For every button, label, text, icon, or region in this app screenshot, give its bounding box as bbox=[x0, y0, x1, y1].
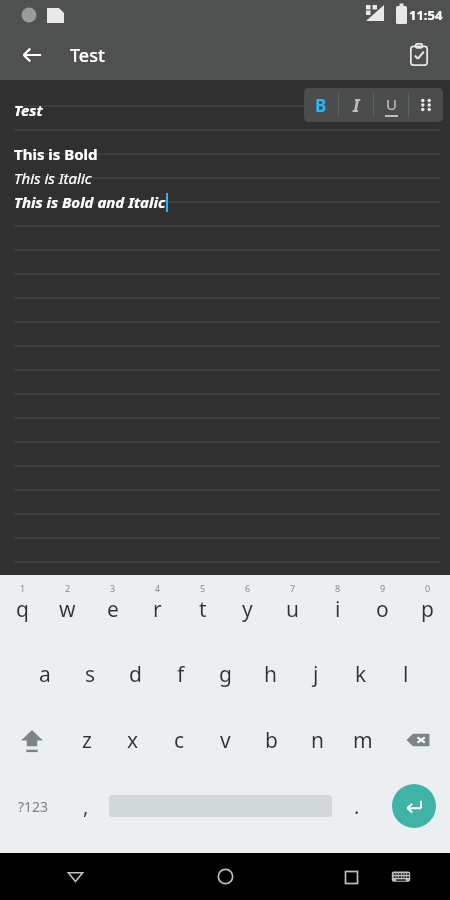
staticText: s bbox=[85, 660, 96, 689]
button[interactable]: , bbox=[67, 773, 105, 839]
staticText: w bbox=[59, 595, 76, 624]
staticText: 11:54 bbox=[409, 6, 443, 24]
staticText: This is Bold bbox=[14, 144, 98, 164]
button[interactable]: h bbox=[248, 641, 293, 707]
staticText: 4 bbox=[155, 582, 161, 594]
button[interactable]: n bbox=[294, 707, 340, 773]
staticText: a bbox=[39, 660, 51, 689]
button[interactable]: Recent apps bbox=[329, 855, 373, 899]
button[interactable]: v bbox=[202, 707, 248, 773]
button[interactable]: ?123 bbox=[0, 773, 67, 839]
button[interactable]: Back bbox=[0, 853, 150, 900]
button[interactable]: . bbox=[335, 773, 378, 839]
button[interactable]: 1 bbox=[0, 579, 45, 641]
button[interactable]: Back bbox=[12, 35, 52, 75]
staticText: m bbox=[353, 726, 373, 755]
button[interactable]: Shift bbox=[0, 707, 64, 773]
staticText: n bbox=[311, 726, 324, 755]
button[interactable]: Hide keyboard bbox=[381, 857, 421, 897]
staticText: Test bbox=[14, 100, 43, 120]
button[interactable]: l bbox=[383, 641, 428, 707]
button[interactable]: Italic bbox=[339, 88, 373, 122]
staticText: z bbox=[82, 726, 92, 755]
button[interactable]: 4 bbox=[135, 579, 180, 641]
button[interactable]: z bbox=[64, 707, 110, 773]
staticText: 7 bbox=[290, 582, 296, 594]
staticText: 9 bbox=[380, 582, 386, 594]
staticText: h bbox=[264, 660, 277, 689]
staticText: b bbox=[265, 726, 278, 755]
button[interactable]: 0 bbox=[405, 579, 450, 641]
staticText: c bbox=[174, 726, 185, 755]
button[interactable]: Enter bbox=[378, 773, 450, 839]
staticText: r bbox=[153, 595, 162, 624]
staticText: p bbox=[421, 595, 434, 624]
staticText: g bbox=[219, 660, 232, 689]
staticText: v bbox=[220, 726, 231, 755]
staticText: 6 bbox=[245, 582, 251, 594]
staticText: 0 bbox=[425, 582, 431, 594]
button[interactable]: Checklist bbox=[398, 34, 440, 76]
button[interactable]: 6 bbox=[225, 579, 270, 641]
button[interactable]: 3 bbox=[90, 579, 135, 641]
staticText: I bbox=[353, 94, 360, 117]
button[interactable]: Space bbox=[105, 773, 335, 839]
staticText: j bbox=[313, 660, 319, 689]
staticText: 1 bbox=[20, 582, 26, 594]
staticText: f bbox=[177, 660, 185, 689]
button[interactable]: Backspace bbox=[386, 707, 450, 773]
staticText: 8 bbox=[335, 582, 341, 594]
button[interactable]: 7 bbox=[270, 579, 315, 641]
button[interactable]: m bbox=[340, 707, 386, 773]
staticText: ?123 bbox=[18, 797, 49, 816]
staticText: o bbox=[376, 595, 389, 624]
staticText: e bbox=[107, 595, 119, 624]
staticText: t bbox=[199, 595, 207, 624]
button[interactable]: Underline bbox=[374, 88, 408, 122]
button[interactable]: d bbox=[113, 641, 158, 707]
button[interactable]: x bbox=[110, 707, 156, 773]
staticText: k bbox=[355, 660, 367, 689]
staticText: d bbox=[129, 660, 142, 689]
button[interactable]: Home bbox=[150, 853, 300, 900]
staticText: Test bbox=[70, 43, 105, 68]
staticText: . bbox=[354, 793, 360, 820]
staticText: 3 bbox=[110, 582, 116, 594]
button[interactable]: Bold bbox=[304, 88, 338, 122]
staticText: u bbox=[286, 595, 299, 624]
button[interactable]: j bbox=[293, 641, 338, 707]
button[interactable]: k bbox=[338, 641, 383, 707]
button[interactable]: f bbox=[158, 641, 203, 707]
staticText: i bbox=[335, 595, 341, 624]
staticText: , bbox=[83, 793, 89, 820]
staticText: This is Bold and Italic bbox=[14, 192, 166, 212]
button[interactable]: 2 bbox=[45, 579, 90, 641]
staticText: q bbox=[16, 595, 29, 624]
staticText: 2 bbox=[65, 582, 71, 594]
staticText: y bbox=[242, 595, 253, 624]
button[interactable]: 5 bbox=[180, 579, 225, 641]
staticText: B bbox=[315, 94, 327, 117]
button[interactable]: 9 bbox=[360, 579, 405, 641]
staticText: This is Italic bbox=[14, 168, 92, 188]
button[interactable]: b bbox=[248, 707, 294, 773]
staticText: x bbox=[127, 726, 139, 755]
button[interactable]: s bbox=[68, 641, 113, 707]
staticText: l bbox=[403, 660, 409, 689]
button[interactable]: g bbox=[203, 641, 248, 707]
button[interactable]: More formatting options bbox=[409, 88, 443, 122]
button[interactable]: 8 bbox=[315, 579, 360, 641]
button[interactable]: c bbox=[156, 707, 202, 773]
staticText: U bbox=[386, 94, 397, 114]
button[interactable]: a bbox=[22, 641, 68, 707]
staticText: 5 bbox=[200, 582, 206, 594]
